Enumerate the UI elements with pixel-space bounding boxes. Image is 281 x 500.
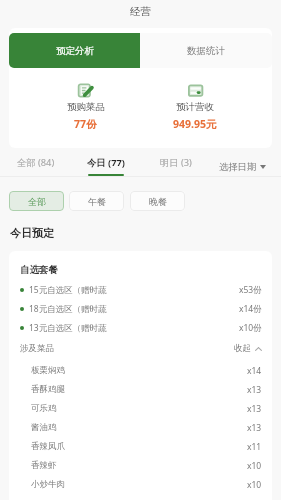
staticText: 香辣虾 [31, 460, 57, 471]
staticText: 18元自选区（赠时蔬 [29, 303, 107, 315]
staticText: 今日预定 [10, 226, 54, 240]
staticText: x14 [247, 365, 262, 377]
staticText: 小炒牛肉 [31, 479, 65, 490]
staticText: 香酥鸡腿 [31, 384, 65, 395]
staticText: x10 [247, 460, 262, 472]
button[interactable]: 数据统计 [140, 33, 272, 68]
button[interactable]: 全部 (84) [0, 148, 71, 177]
staticText: x11 [247, 441, 262, 453]
button[interactable]: 板栗焖鸡 [31, 361, 262, 380]
staticText: x13 [247, 422, 262, 434]
staticText: 选择日期 [219, 161, 257, 173]
button[interactable]: 15元自选区（赠时蔬 [20, 280, 262, 299]
staticText: x13 [247, 384, 262, 396]
staticText: x14份 [239, 303, 262, 315]
staticText: 全部 (84) [17, 156, 55, 169]
button[interactable]: 午餐 [69, 191, 124, 211]
staticText: 预计营收 [176, 101, 214, 113]
button[interactable]: 香辣虾 [31, 456, 262, 475]
staticText: x10 [247, 479, 262, 491]
button[interactable]: 预定分析 [9, 33, 140, 68]
staticText: 可乐鸡 [31, 403, 57, 414]
staticText: 今日 (77) [87, 156, 125, 169]
staticText: 15元自选区（赠时蔬 [29, 284, 107, 296]
staticText: 预购菜品 [67, 101, 105, 113]
staticText: 午餐 [88, 196, 106, 207]
staticText: 晚餐 [149, 196, 167, 207]
button[interactable]: 全部 [9, 191, 64, 211]
staticText: 收起 [234, 343, 251, 354]
staticText: 香辣凤爪 [31, 441, 65, 452]
staticText: 酱油鸡 [31, 422, 57, 433]
staticText: 全部 [28, 196, 46, 207]
button[interactable]: 13元自选区（赠时蔬 [20, 318, 262, 337]
button[interactable]: 今日 (77) [71, 148, 141, 177]
button[interactable]: 香酥鸡腿 [31, 380, 262, 399]
button[interactable]: 18元自选区（赠时蔬 [20, 299, 262, 318]
button[interactable]: 小炒牛肉 [31, 475, 262, 494]
staticText: 77份 [74, 117, 97, 131]
staticText: 涉及菜品 [20, 343, 54, 354]
button[interactable]: 酱油鸡 [31, 418, 262, 437]
button[interactable]: 晚餐 [130, 191, 185, 211]
staticText: x10份 [239, 322, 262, 334]
button[interactable]: 香辣凤爪 [31, 437, 262, 456]
staticText: 预定分析 [56, 45, 94, 57]
staticText: 板栗焖鸡 [31, 365, 65, 376]
staticText: x13 [247, 403, 262, 415]
staticText: 明日 (3) [160, 156, 192, 169]
staticText: 13元自选区（赠时蔬 [29, 322, 107, 334]
staticText: x53份 [239, 284, 262, 296]
staticText: 经营 [130, 5, 151, 18]
staticText: 数据统计 [187, 45, 225, 57]
button[interactable]: 明日 (3) [141, 148, 211, 177]
button[interactable]: 可乐鸡 [31, 399, 262, 418]
staticText: 949.95元 [173, 117, 217, 131]
button[interactable]: 收起 [234, 343, 262, 354]
button[interactable]: 选择日期 [211, 148, 281, 177]
staticText: 自选套餐 [20, 264, 58, 276]
